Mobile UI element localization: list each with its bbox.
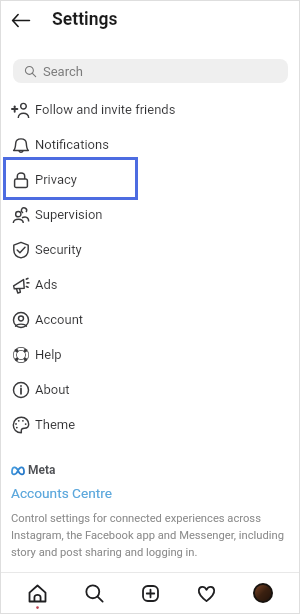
staticText: Security <box>35 242 82 257</box>
button[interactable]: Account <box>1 302 299 337</box>
button[interactable]: Profile <box>243 573 283 613</box>
staticText: Settings <box>52 9 118 30</box>
staticText: Supervision <box>35 207 103 222</box>
button[interactable]: Create <box>130 573 170 613</box>
staticText: Help <box>35 347 62 362</box>
button[interactable]: Search <box>13 59 288 83</box>
staticText: Theme <box>35 417 76 432</box>
button[interactable]: Back <box>3 2 39 38</box>
button[interactable]: Ads <box>1 267 299 302</box>
button[interactable]: Supervision <box>1 197 299 232</box>
button[interactable]: Notifications <box>1 127 299 162</box>
staticText: Control settings for connected experienc… <box>11 512 290 559</box>
button[interactable]: Search <box>74 573 114 613</box>
staticText: Notifications <box>35 137 109 152</box>
button[interactable]: About <box>1 372 299 407</box>
staticText: Follow and invite friends <box>35 102 176 117</box>
button[interactable]: Privacy <box>1 162 299 197</box>
button[interactable]: Follow and invite friends <box>1 92 299 127</box>
staticText: Account <box>35 312 84 327</box>
staticText: Search <box>43 64 83 79</box>
button[interactable]: Theme <box>1 407 299 442</box>
staticText: Privacy <box>35 172 77 187</box>
staticText: Accounts Centre <box>11 485 113 501</box>
button[interactable]: Accounts Centre <box>11 485 113 501</box>
staticText: About <box>35 382 70 397</box>
button[interactable]: Help <box>1 337 299 372</box>
staticText: Ads <box>35 277 58 292</box>
button[interactable]: Security <box>1 232 299 267</box>
button[interactable]: Activity <box>186 573 226 613</box>
button[interactable]: Home <box>17 573 57 613</box>
staticText: Meta <box>28 463 56 477</box>
